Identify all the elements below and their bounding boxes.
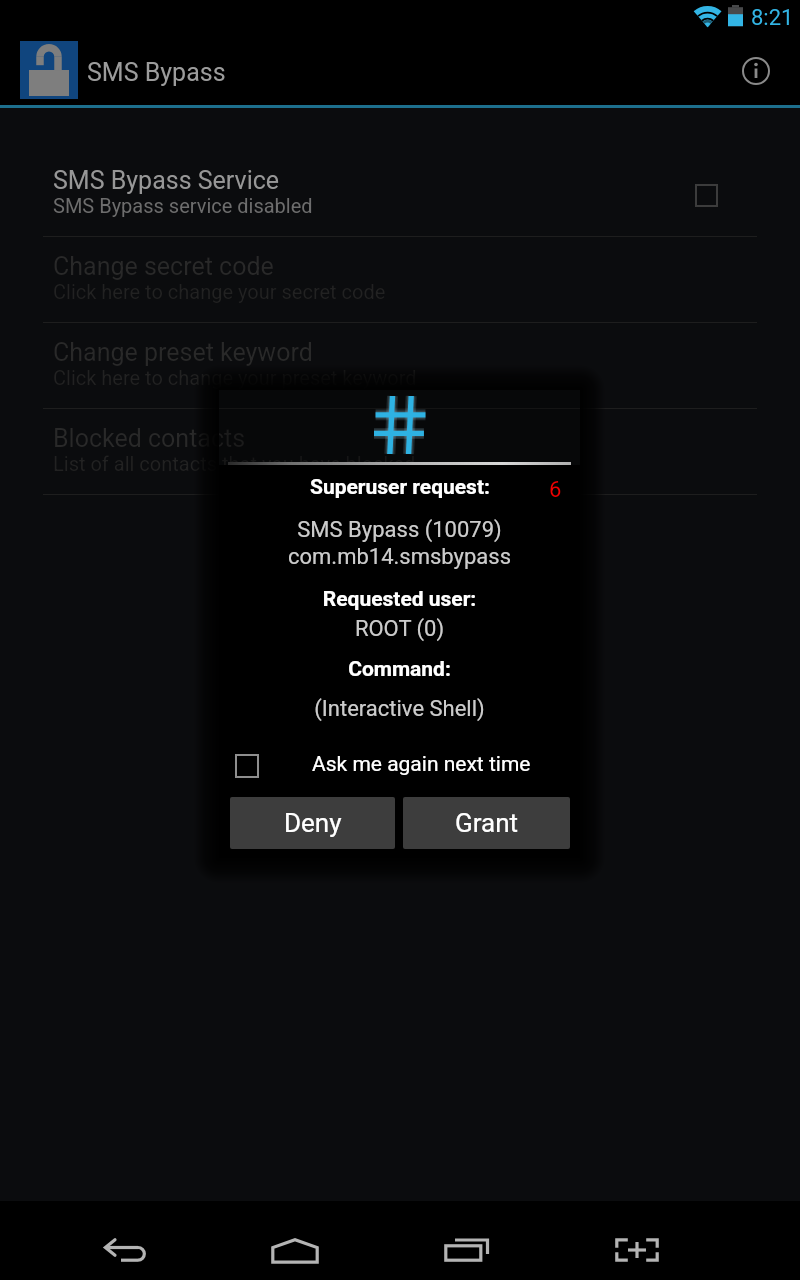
button[interactable]: SMS Bypass Service [0, 149, 800, 235]
staticText: Superuser request: [310, 475, 490, 500]
button[interactable]: Screenshot [552, 1201, 722, 1279]
staticText: 6 [549, 477, 562, 503]
staticText: Click here to change your preset keyword [53, 366, 417, 389]
button[interactable]: Ask me again next time [228, 746, 266, 786]
staticText: Blocked contacts [53, 424, 246, 453]
staticText: Change preset keyword [53, 338, 313, 367]
button[interactable]: Change preset keyword [0, 321, 800, 407]
staticText: ROOT (0) [219, 616, 580, 642]
button[interactable]: Change secret code [0, 235, 800, 321]
button[interactable]: About [717, 38, 794, 108]
staticText: Change secret code [53, 252, 274, 281]
button[interactable]: Back [41, 1201, 211, 1279]
staticText: Click here to change your secret code [53, 280, 386, 303]
staticText: 8:21 [751, 5, 794, 31]
button[interactable]: Grant [403, 797, 570, 849]
button[interactable]: Blocked contacts [0, 407, 800, 493]
staticText: Requested user: [219, 587, 580, 612]
staticText: Ask me again next time [312, 752, 531, 777]
staticText: SMS Bypass [87, 58, 226, 87]
staticText: Deny [284, 808, 342, 838]
staticText: Command: [219, 657, 580, 682]
staticText: SMS Bypass (10079) [219, 517, 580, 543]
staticText: SMS Bypass service disabled [53, 194, 313, 217]
button[interactable]: Home [210, 1201, 380, 1279]
staticText: Grant [455, 808, 519, 838]
staticText: List of all contacts that you have block… [53, 452, 416, 475]
staticText: (Interactive Shell) [219, 696, 580, 722]
button[interactable]: Deny [230, 797, 395, 849]
button[interactable]: Recent apps [382, 1201, 552, 1279]
staticText: com.mb14.smsbypass [219, 544, 580, 570]
staticText: SMS Bypass Service [53, 166, 280, 195]
